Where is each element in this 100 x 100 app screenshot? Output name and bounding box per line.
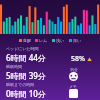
button[interactable]: 気分 — [69, 67, 78, 81]
staticText: 睡眠時間 — [6, 64, 22, 69]
staticText: 睡眠までの時間 — [6, 82, 35, 87]
other: Mood — [69, 72, 78, 81]
staticText: 気分 — [70, 67, 78, 72]
staticText: 0時間 10分 — [6, 88, 46, 99]
button[interactable]: メモ — [69, 84, 78, 98]
button[interactable]: レム — [35, 38, 48, 43]
button[interactable]: ベッドにいた時間 — [6, 46, 100, 63]
staticText: ベッドにいた時間 — [6, 46, 39, 51]
staticText: 58% — [71, 54, 85, 64]
staticText: メモ — [69, 84, 78, 89]
staticText: 5時間 39分 — [6, 70, 46, 81]
staticText: 6時間 44分 — [6, 52, 46, 63]
button[interactable]: 浅い — [52, 38, 65, 43]
other: Memo — [69, 89, 78, 98]
button[interactable]: 睡眠までの時間 — [6, 82, 100, 99]
button[interactable]: 覚醒 — [19, 38, 31, 43]
staticText: レム — [39, 38, 48, 43]
staticText: 浅い — [56, 38, 65, 43]
button[interactable]: 睡眠時間 — [6, 64, 100, 81]
button[interactable]: 58% — [71, 54, 92, 64]
staticText: 覚醒 — [23, 38, 31, 43]
staticText: 深い — [73, 38, 82, 43]
button[interactable]: 深い — [69, 38, 82, 43]
